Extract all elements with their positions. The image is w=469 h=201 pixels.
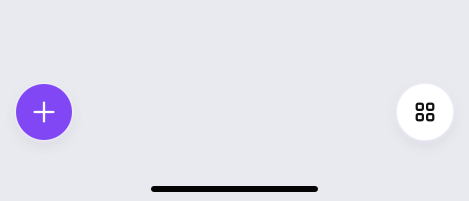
button[interactable]: Add xyxy=(16,84,72,140)
button[interactable]: Apps xyxy=(397,84,453,140)
